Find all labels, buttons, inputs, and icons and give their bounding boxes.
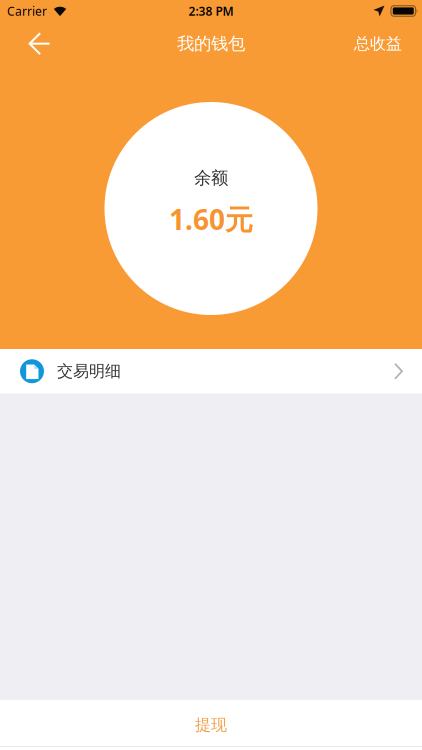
staticText: 我的钱包 (177, 33, 245, 54)
staticText: 提现 (195, 715, 227, 735)
staticText: 1.60元 (169, 201, 253, 238)
staticText: 余额 (194, 167, 228, 189)
button[interactable]: Back (0, 22, 51, 66)
staticText: 交易明细 (57, 361, 121, 381)
staticText: 2:38 PM (188, 3, 233, 19)
button[interactable]: 交易明细 (0, 349, 422, 393)
button[interactable]: 总收益 (354, 22, 422, 66)
staticText: Carrier (7, 3, 47, 19)
button[interactable]: 提现 (0, 700, 422, 750)
staticText: 总收益 (354, 34, 402, 54)
